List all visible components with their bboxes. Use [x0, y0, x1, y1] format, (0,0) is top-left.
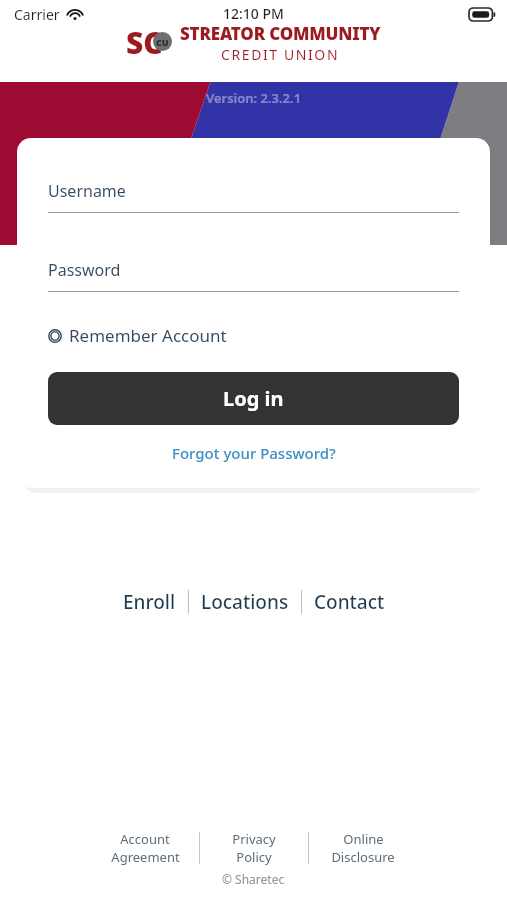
staticText: Privacy — [232, 830, 276, 848]
staticText: Log in — [223, 385, 284, 412]
button[interactable]: Locations — [189, 583, 301, 621]
staticText: Contact — [314, 589, 385, 615]
staticText: Account — [120, 830, 170, 848]
staticText: Remember Account — [69, 324, 227, 347]
button[interactable]: Online — [309, 828, 417, 868]
staticText: Locations — [201, 589, 289, 615]
staticText: Policy — [236, 848, 272, 866]
staticText: CU — [156, 36, 169, 48]
staticText: Online — [343, 830, 384, 848]
staticText: 12:10 PM — [223, 4, 284, 23]
staticText: Enroll — [123, 589, 176, 615]
staticText: Agreement — [111, 848, 180, 866]
button[interactable]: Forgot your Password? — [48, 443, 459, 463]
staticText: Password — [48, 259, 121, 281]
button[interactable]: Log in — [48, 372, 459, 425]
staticText: Forgot your Password? — [172, 443, 336, 463]
staticText: CREDIT UNION — [221, 45, 340, 64]
button[interactable]: Account — [91, 828, 199, 868]
staticText: Version: 2.3.2.1 — [206, 89, 302, 107]
button[interactable]: Privacy — [200, 828, 308, 868]
staticText: Username — [48, 180, 126, 202]
staticText: Carrier — [14, 5, 60, 24]
staticText: SC — [126, 22, 163, 56]
staticText: © Sharetec — [222, 871, 285, 887]
staticText: STREATOR COMMUNITY — [180, 22, 381, 45]
button[interactable]: Remember Account — [48, 322, 227, 349]
staticText: Disclosure — [331, 848, 395, 866]
button[interactable]: Enroll — [111, 583, 188, 621]
button[interactable]: Contact — [302, 583, 397, 621]
